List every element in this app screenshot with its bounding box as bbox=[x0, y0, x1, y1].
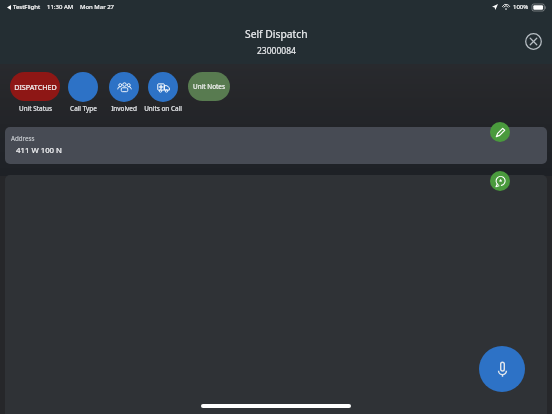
staticText: 23000084 bbox=[257, 45, 296, 57]
staticText: Self Dispatch bbox=[245, 27, 308, 41]
staticText: Unit Notes bbox=[193, 82, 225, 91]
staticText: TestFlight bbox=[13, 3, 41, 11]
button[interactable]: Involved bbox=[109, 72, 139, 102]
button[interactable]: Call Type bbox=[68, 72, 98, 102]
button[interactable]: Microphone bbox=[479, 346, 525, 392]
button[interactable]: Comments bbox=[490, 171, 510, 191]
staticText: Address bbox=[11, 134, 35, 142]
button[interactable]: DISPATCHED bbox=[10, 72, 60, 101]
staticText: 11:30 AM bbox=[47, 3, 74, 11]
button[interactable]: Address bbox=[5, 127, 547, 164]
staticText: Mon Mar 27 bbox=[80, 3, 115, 11]
button[interactable]: Edit bbox=[490, 122, 510, 142]
button[interactable]: Close bbox=[521, 29, 546, 54]
staticText: Unit Status bbox=[19, 104, 52, 113]
staticText: 411 W 100 N bbox=[16, 145, 63, 156]
staticText: 100% bbox=[513, 3, 529, 11]
button[interactable]: Units on Call bbox=[148, 72, 178, 102]
staticText: DISPATCHED bbox=[14, 82, 57, 92]
staticText: Units on Call bbox=[144, 104, 182, 113]
staticText: Call Type bbox=[70, 104, 97, 113]
staticText: Involved bbox=[111, 104, 137, 113]
button[interactable]: Unit Notes bbox=[188, 72, 230, 101]
